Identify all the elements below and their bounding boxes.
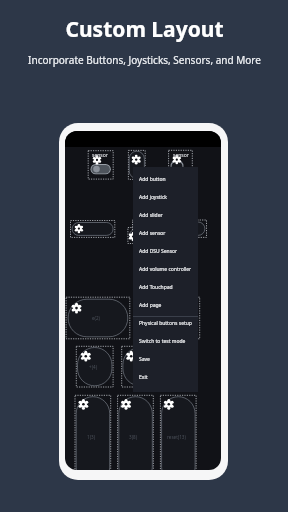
button[interactable]: Switch to test mode	[133, 332, 198, 350]
staticText: Physical buttons setup	[139, 320, 192, 327]
button[interactable]: Add joystick	[133, 188, 198, 206]
staticText: Add Touchpad	[139, 284, 173, 291]
staticText: sensor	[92, 152, 108, 159]
staticText: Save	[139, 356, 150, 363]
staticText: Add joystick	[139, 194, 167, 201]
button[interactable]: Add slider	[133, 206, 198, 224]
staticText: Switch to test mode	[139, 338, 186, 345]
staticText: e(2)	[92, 315, 100, 321]
staticText: Custom Layout	[65, 15, 224, 44]
staticText: +(4)	[89, 364, 98, 370]
button[interactable]: Add DSU Sensor	[133, 242, 198, 260]
staticText: Add button	[139, 176, 166, 183]
button[interactable]: Add sensor	[133, 224, 198, 242]
button[interactable]: Save	[133, 350, 198, 368]
staticText: 1(3)	[87, 434, 96, 440]
staticText: Exit	[139, 374, 148, 381]
button[interactable]: Add Touchpad	[133, 278, 198, 296]
button[interactable]: Add button	[133, 170, 198, 188]
staticText: Add sensor	[139, 230, 166, 237]
staticText: reset(13)	[167, 434, 186, 440]
button[interactable]: Exit	[133, 368, 198, 386]
button[interactable]: Add volume controller	[133, 260, 198, 278]
staticText: Add page	[139, 302, 162, 309]
button[interactable]: Physical buttons setup	[133, 314, 198, 332]
staticText: Add slider	[139, 212, 163, 219]
staticText: Add DSU Sensor	[139, 248, 178, 255]
staticText: Incorporate Buttons, Joysticks, Sensors,…	[28, 53, 261, 67]
button[interactable]: Add page	[133, 296, 198, 314]
staticText: 3(8)	[129, 434, 138, 440]
staticText: Add volume controller	[139, 266, 192, 273]
staticText: sensor	[173, 152, 189, 159]
